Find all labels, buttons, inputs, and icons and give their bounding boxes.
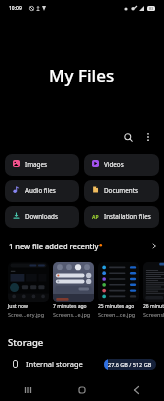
- staticText: APK: [92, 214, 99, 221]
- staticText: 26 minutes ago: [143, 303, 164, 310]
- staticText: 10:09: [9, 5, 22, 12]
- staticText: 27.6 GB / 512 GB: [108, 361, 152, 368]
- staticText: Just now: [8, 303, 28, 310]
- button[interactable]: APK: [84, 206, 159, 228]
- button[interactable]: 25 minutes ago: [98, 262, 139, 318]
- staticText: Downloads: [25, 212, 58, 221]
- staticText: My Files: [49, 64, 115, 87]
- staticText: 83: [149, 6, 154, 11]
- staticText: Documents: [104, 186, 138, 195]
- button[interactable]: Home: [54, 379, 109, 401]
- button[interactable]: Videos: [84, 154, 159, 176]
- staticText: Screen...ce.jpg: [98, 311, 136, 318]
- staticText: Videos: [104, 160, 124, 169]
- button[interactable]: Search: [118, 127, 138, 147]
- button[interactable]: Images: [5, 154, 79, 176]
- button[interactable]: Back: [109, 379, 164, 401]
- staticText: Images: [25, 160, 47, 169]
- button[interactable]: Recents: [0, 379, 54, 401]
- button[interactable]: Just now: [8, 262, 49, 318]
- button[interactable]: More options: [138, 127, 158, 147]
- button[interactable]: Internal storage: [0, 354, 164, 374]
- staticText: 25 minutes ago: [98, 303, 135, 310]
- button[interactable]: Audio files: [5, 180, 79, 202]
- button[interactable]: 26 minutes ago: [143, 262, 164, 318]
- staticText: 1 new file added recently: [9, 241, 99, 251]
- staticText: Audio files: [25, 186, 56, 195]
- staticText: Storage: [8, 336, 44, 349]
- button[interactable]: 7 minutes ago: [53, 262, 94, 318]
- staticText: Scree...ery.jpg: [8, 311, 45, 318]
- staticText: Screens...e.jpg: [53, 311, 91, 318]
- staticText: Screensh...jpg: [143, 311, 164, 318]
- button[interactable]: 1 new file added recently: [0, 238, 164, 254]
- button[interactable]: Documents: [84, 180, 159, 202]
- staticText: Installation files: [104, 212, 151, 221]
- staticText: Internal storage: [26, 359, 83, 369]
- staticText: 7 minutes ago: [53, 303, 87, 310]
- button[interactable]: Downloads: [5, 206, 79, 228]
